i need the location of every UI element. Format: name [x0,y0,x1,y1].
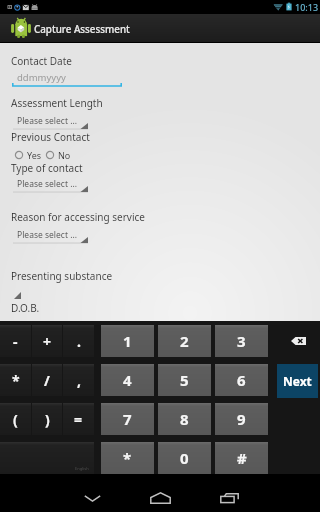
staticText: 0 [180,448,189,468]
button[interactable]: - [0,325,31,357]
button[interactable]: ) [32,403,62,435]
staticText: 9 [237,409,246,429]
staticText: No [58,149,71,161]
staticText: Type of contact [11,161,83,175]
staticText: ddmmyyyy [17,71,66,84]
staticText: Reason for accessing service [11,210,145,224]
button[interactable]: * [101,442,154,474]
button[interactable]: 5 [158,364,211,396]
staticText: 10:13 [295,1,319,13]
staticText: 3 [237,331,246,351]
button[interactable]: Yes [15,149,42,161]
staticText: / [44,371,50,390]
button[interactable]: 8 [158,403,211,435]
staticText: D.O.B. [11,301,40,315]
button[interactable]: 4 [101,364,154,396]
button[interactable]: = [63,403,94,435]
button[interactable]: . [63,325,94,357]
staticText: 6 [237,370,246,390]
button[interactable]: / [32,364,62,396]
button[interactable]: 9 [215,403,268,435]
staticText: English [75,466,89,471]
staticText: Capture Assessment [34,23,130,36]
staticText: 1 [123,331,132,351]
staticText: = [74,410,83,429]
button[interactable]: Please select ... [12,178,88,193]
staticText: 8 [180,409,189,429]
staticText: * [123,448,132,468]
button[interactable]: 0 [158,442,211,474]
staticText: * [12,371,20,390]
staticText: Please select ... [17,178,78,190]
button[interactable]: Please select ... [12,229,88,244]
staticText: Contact Date [11,54,72,68]
button[interactable]: Please select ... [12,115,88,130]
button[interactable]: Delete [268,325,320,357]
button[interactable]: , [63,364,94,396]
staticText: Please select ... [17,229,78,241]
button[interactable]: Hide keyboard [68,483,116,512]
staticText: + [43,332,52,351]
button[interactable]: 7 [101,403,154,435]
staticText: 5 [180,370,189,390]
staticText: Presenting substance [11,269,113,283]
staticText: Yes [27,149,42,161]
staticText: , [77,371,81,390]
staticText: 7 [123,409,132,429]
button[interactable]: 3 [215,325,268,357]
button[interactable]: # [215,442,268,474]
staticText: 4 [123,370,132,390]
staticText: . [77,332,81,351]
button[interactable]: * [0,364,31,396]
button[interactable]: 2 [158,325,211,357]
staticText: # [237,448,247,468]
staticText: - [13,332,18,351]
staticText: ) [45,410,50,429]
staticText: 2 [180,331,189,351]
button[interactable]: No [46,149,71,161]
button[interactable]: 1 [101,325,154,357]
staticText: Previous Contact [11,130,90,144]
button[interactable] [0,442,94,474]
button[interactable]: Next [277,364,318,398]
button[interactable]: + [32,325,62,357]
staticText: Next [283,373,312,389]
staticText: ( [13,410,18,429]
button[interactable]: 6 [215,364,268,396]
staticText: Assessment Length [11,96,103,110]
staticText: Please select ... [17,115,78,127]
button[interactable]: Recent apps [205,483,253,512]
button[interactable]: Home [136,483,184,512]
button[interactable]: ( [0,403,31,435]
